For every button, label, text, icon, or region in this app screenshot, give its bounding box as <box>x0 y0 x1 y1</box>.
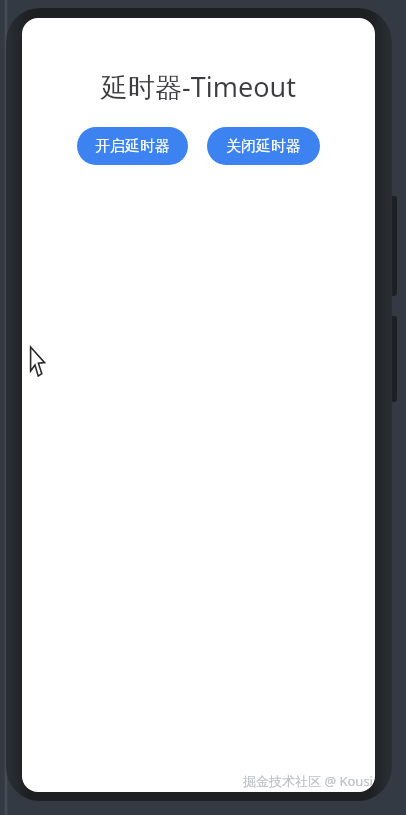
staticText: 关闭延时器 <box>226 137 301 156</box>
staticText: 延时器-Timeout <box>101 68 296 105</box>
button[interactable]: 开启延时器 <box>77 127 188 165</box>
staticText: 开启延时器 <box>95 137 170 156</box>
staticText: 掘金技术社区 @ Kousi <box>243 772 373 790</box>
button[interactable]: 关闭延时器 <box>207 127 320 165</box>
